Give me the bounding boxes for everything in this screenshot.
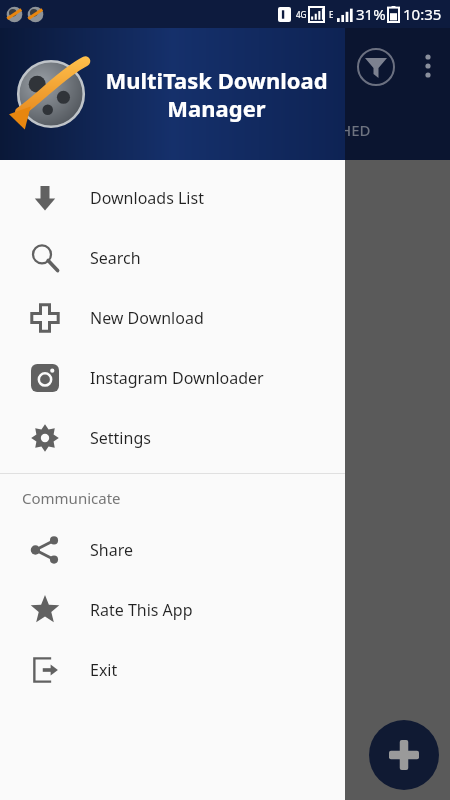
staticText: Rate This App xyxy=(90,599,193,621)
button[interactable]: Filter xyxy=(355,46,397,88)
staticText: Downloads List xyxy=(90,187,204,209)
staticText: 31% xyxy=(356,4,386,24)
button[interactable]: New download xyxy=(369,720,439,790)
staticText: Settings xyxy=(90,427,151,449)
staticText: MultiTask Download Manager xyxy=(100,65,333,123)
button[interactable]: Instagram Downloader xyxy=(0,348,345,408)
staticText: Exit xyxy=(90,659,118,681)
staticText: HED xyxy=(340,120,371,140)
staticText: Share xyxy=(90,539,133,561)
button[interactable]: More options xyxy=(408,46,448,86)
staticText: E xyxy=(329,9,334,20)
staticText: Communicate xyxy=(22,488,121,508)
staticText: New Download xyxy=(90,307,204,329)
button[interactable]: Exit xyxy=(0,640,345,700)
button[interactable]: Settings xyxy=(0,408,345,468)
staticText: Instagram Downloader xyxy=(90,367,264,389)
button[interactable]: Share xyxy=(0,520,345,580)
button[interactable]: New Download xyxy=(0,288,345,348)
button[interactable]: Search xyxy=(0,228,345,288)
button[interactable]: Downloads List xyxy=(0,168,345,228)
staticText: Search xyxy=(90,247,141,269)
staticText: 4G xyxy=(296,9,307,20)
staticText: 10:35 xyxy=(403,4,442,24)
button[interactable]: Rate This App xyxy=(0,580,345,640)
